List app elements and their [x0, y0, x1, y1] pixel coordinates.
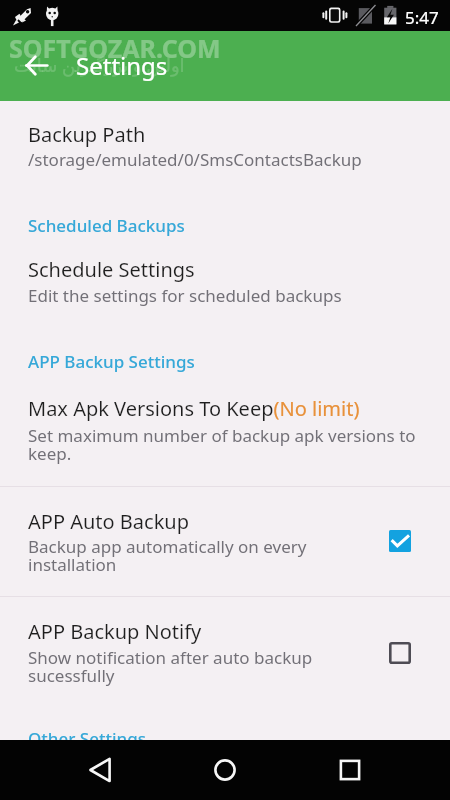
staticText: APP Backup Settings: [28, 350, 195, 373]
staticText: اولین و بزرگترین سایت: [14, 53, 185, 78]
button[interactable]: Recent apps: [322, 742, 378, 798]
staticText: Scheduled Backups: [28, 214, 185, 237]
staticText: Schedule Settings: [28, 256, 195, 283]
button[interactable]: [0, 597, 450, 706]
button[interactable]: Unchecked: [389, 642, 411, 664]
button[interactable]: [0, 487, 450, 596]
staticText: Show notification after auto backup suce…: [28, 646, 348, 687]
button[interactable]: Checked: [389, 530, 411, 552]
staticText: Edit the settings for scheduled backups: [28, 284, 342, 307]
button[interactable]: Home: [197, 742, 253, 798]
staticText: /storage/emulated/0/SmsContactsBackup: [28, 148, 362, 171]
staticText: SOFTGOZAR.COM: [9, 31, 221, 65]
staticText: Backup app automatically on every instal…: [28, 535, 348, 576]
button[interactable]: [0, 251, 450, 311]
button[interactable]: [0, 101, 450, 181]
button[interactable]: Back: [13, 42, 59, 88]
staticText: 5:47: [405, 6, 439, 29]
button[interactable]: Back: [72, 742, 128, 798]
staticText: Other Settings: [28, 727, 147, 750]
staticText: APP Auto Backup: [28, 508, 189, 535]
staticText: Backup Path: [28, 121, 146, 148]
staticText: Set maximum number of backup apk version…: [28, 424, 418, 465]
staticText: Settings: [76, 49, 168, 82]
button[interactable]: [0, 391, 450, 476]
staticText: Max Apk Versions To Keep(No limit): [28, 395, 360, 422]
staticText: APP Backup Notify: [28, 618, 202, 645]
